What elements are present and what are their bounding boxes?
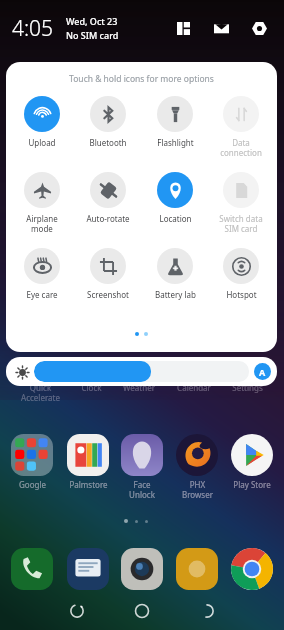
button[interactable]: Brightness slider: [34, 361, 249, 382]
staticText: Play Store: [233, 479, 271, 490]
staticText: Screenshot: [87, 289, 129, 300]
button[interactable]: Settings: [246, 15, 272, 41]
button[interactable]: Gallery: [176, 548, 218, 590]
staticText: Wed, Oct 23: [66, 15, 118, 27]
staticText: Auto-rotate: [86, 213, 130, 224]
button[interactable]: Eye care: [11, 248, 73, 300]
button[interactable]: Airplane mode: [11, 172, 73, 234]
staticText: Flashlight: [157, 137, 194, 148]
staticText: Hotspot: [226, 289, 257, 300]
staticText: PHX Browser: [182, 479, 213, 500]
staticText: Weather: [123, 382, 155, 393]
staticText: Quick Accelerate: [21, 382, 60, 403]
staticText: A: [259, 366, 266, 378]
button[interactable]: Edit tiles: [170, 15, 196, 41]
staticText: Clock: [81, 382, 102, 393]
staticText: Data connection: [220, 137, 262, 158]
button[interactable]: Palmstore: [62, 434, 114, 490]
button[interactable]: Brightness: [12, 362, 32, 382]
staticText: 4:05: [12, 14, 54, 43]
button[interactable]: Camera: [121, 548, 163, 590]
staticText: Calendar: [177, 382, 211, 393]
staticText: Eye care: [26, 289, 58, 300]
button[interactable]: Data connection: [210, 96, 272, 158]
button[interactable]: Hotspot: [210, 248, 272, 300]
staticText: Touch & hold icons for more options: [6, 73, 277, 85]
button[interactable]: Flashlight: [144, 96, 206, 148]
staticText: No SIM card: [66, 29, 119, 41]
button[interactable]: Google: [6, 434, 58, 490]
button[interactable]: Phone: [11, 548, 53, 590]
staticText: Airplane mode: [26, 213, 58, 234]
staticText: Google: [19, 479, 46, 490]
staticText: Switch data SIM card: [219, 213, 263, 234]
button[interactable]: Screenshot: [77, 248, 139, 300]
button[interactable]: Upload: [11, 96, 73, 148]
button[interactable]: Auto-rotate: [77, 172, 139, 224]
staticText: Battery lab: [155, 289, 196, 300]
button[interactable]: Location: [144, 172, 206, 224]
button[interactable]: Messages: [67, 548, 109, 590]
button[interactable]: Back: [191, 597, 223, 625]
staticText: Location: [159, 213, 192, 224]
staticText: Upload: [28, 137, 56, 148]
button[interactable]: Chrome: [231, 548, 273, 590]
button[interactable]: Recents: [61, 597, 93, 625]
staticText: Palmstore: [69, 479, 108, 490]
staticText: Bluetooth: [89, 137, 127, 148]
button[interactable]: Switch data SIM card: [210, 172, 272, 234]
button[interactable]: Battery lab: [144, 248, 206, 300]
button[interactable]: Auto brightness: [254, 363, 271, 380]
button[interactable]: Notifications: [208, 15, 234, 41]
button[interactable]: Bluetooth: [77, 96, 139, 148]
button[interactable]: Play Store: [226, 434, 278, 490]
staticText: Face Unlock: [129, 479, 155, 500]
button[interactable]: PHX Browser: [171, 434, 223, 500]
staticText: Settings: [232, 382, 263, 393]
button[interactable]: Home: [126, 597, 158, 625]
button[interactable]: Face Unlock: [116, 434, 168, 500]
